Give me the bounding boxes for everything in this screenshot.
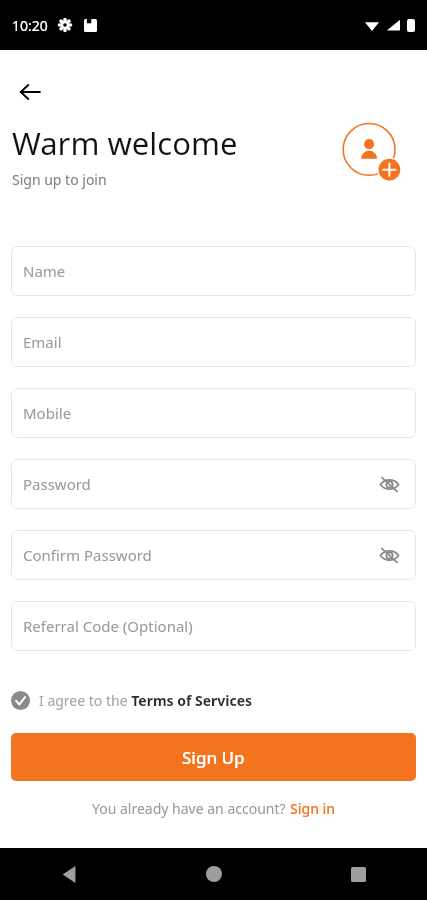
button[interactable]: You already have an account? (92, 799, 336, 818)
button[interactable]: I agree to the Terms of Services (11, 689, 253, 712)
button[interactable]: Mobile (11, 388, 416, 438)
button[interactable]: Password (11, 459, 416, 509)
staticText: Sign Up (182, 746, 245, 769)
button[interactable]: Toggle password visibility (372, 538, 406, 572)
staticText: Confirm Password (23, 545, 152, 565)
staticText: I agree to the Terms of Services (39, 691, 253, 710)
staticText: Name (23, 261, 66, 281)
button[interactable]: Recent apps (337, 853, 379, 895)
staticText: You already have an account? (92, 799, 290, 818)
button[interactable]: Toggle password visibility (372, 467, 406, 501)
button[interactable]: Confirm Password (11, 530, 416, 580)
staticText: Password (23, 474, 91, 494)
button[interactable]: Email (11, 317, 416, 367)
button[interactable]: Home (193, 853, 235, 895)
button[interactable]: Referral Code (Optional) (11, 601, 416, 651)
staticText: 10:20 (12, 16, 48, 35)
staticText: Sign up to join (12, 170, 107, 189)
staticText: Mobile (23, 403, 72, 423)
button[interactable]: Sign Up (11, 733, 416, 781)
staticText: Warm welcome (12, 122, 238, 164)
staticText: Referral Code (Optional) (23, 616, 193, 636)
staticText: Email (23, 332, 62, 352)
button[interactable]: Add profile photo (339, 120, 409, 190)
staticText: Sign in (290, 799, 336, 818)
button[interactable]: Back (10, 72, 50, 112)
button[interactable]: Back (48, 853, 90, 895)
button[interactable]: Name (11, 246, 416, 296)
